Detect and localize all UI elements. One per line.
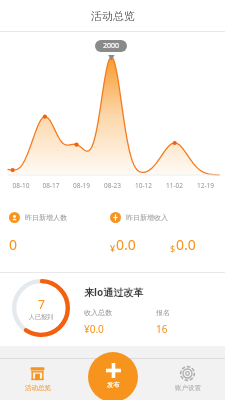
staticText: 账户设置 — [175, 384, 201, 392]
staticText: 08-10 — [6, 181, 36, 190]
button[interactable]: 7 — [0, 273, 225, 346]
button[interactable]: 活动总览 — [0, 358, 75, 400]
staticText: 2000 — [103, 41, 120, 51]
staticText: 收入总数 — [84, 308, 112, 317]
staticText: 7 — [38, 296, 45, 312]
button[interactable]: 账户设置 — [150, 358, 225, 400]
staticText: 昨日新增收入 — [126, 213, 168, 222]
staticText: 活动总览 — [91, 9, 135, 23]
staticText: 人已报到 — [29, 313, 53, 321]
staticText: 16 — [156, 322, 168, 336]
staticText: 11-02 — [159, 181, 190, 190]
staticText: 活动总览 — [25, 384, 51, 392]
staticText: ¥0.0 — [84, 322, 104, 336]
staticText: 08-17 — [36, 181, 66, 190]
staticText: 12-19 — [190, 181, 221, 190]
staticText: 10-12 — [128, 181, 159, 190]
staticText: 0.0 — [176, 235, 196, 254]
staticText: 来lo通过改革 — [84, 285, 144, 299]
staticText: 0.0 — [116, 235, 136, 254]
staticText: 发布 — [107, 381, 120, 389]
staticText: 昨日新增人数 — [25, 213, 67, 222]
staticText: 报名 — [156, 308, 170, 317]
staticText: $ — [170, 242, 176, 254]
staticText: ¥ — [110, 242, 116, 254]
staticText: 0 — [9, 235, 18, 254]
button[interactable]: 发布 — [88, 352, 138, 400]
staticText: 08-19 — [66, 181, 97, 190]
staticText: 08-23 — [97, 181, 128, 190]
